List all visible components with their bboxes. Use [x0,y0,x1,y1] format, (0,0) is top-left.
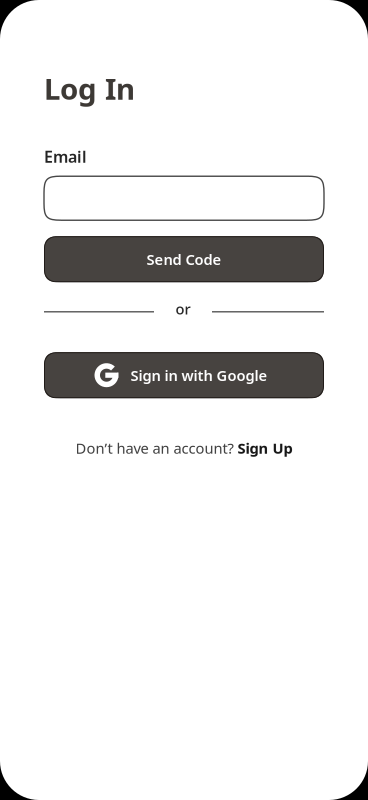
staticText: Log In [44,69,135,108]
staticText: or [175,299,190,318]
staticText: Sign in with Google [130,365,267,385]
staticText: Email [44,146,87,167]
button[interactable]: Send Code [44,236,324,282]
staticText: Send Code [146,249,221,269]
button[interactable]: Sign in with Google [44,352,324,398]
staticText: Sign Up [237,438,292,458]
staticText: Don’t have an account? [75,438,237,458]
button[interactable]: Sign Up [237,438,292,458]
button[interactable]: Email address [44,176,324,220]
